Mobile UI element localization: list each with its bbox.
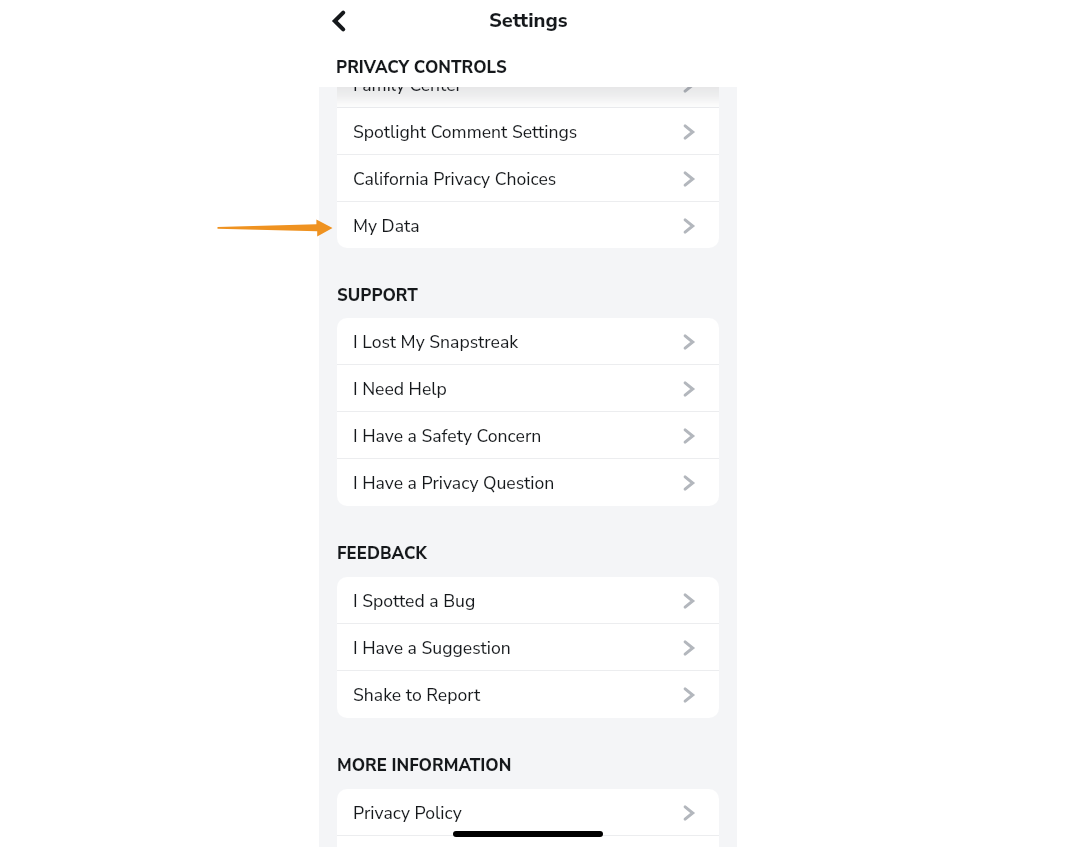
staticText: I Spotted a Bug (353, 589, 476, 613)
staticText: SUPPORT (337, 284, 418, 307)
staticText: I Have a Safety Concern (353, 424, 542, 448)
staticText: My Data (353, 214, 420, 238)
staticText: California Privacy Choices (353, 167, 557, 191)
staticText: I Need Help (353, 377, 447, 401)
staticText: MORE INFORMATION (337, 754, 512, 777)
button[interactable]: I Spotted a Bug (337, 577, 719, 624)
button[interactable]: Back (319, 0, 360, 42)
staticText: Spotlight Comment Settings (353, 120, 578, 144)
staticText: Shake to Report (353, 683, 481, 707)
button[interactable]: Family Center (337, 87, 719, 108)
button[interactable]: Spotlight Comment Settings (337, 108, 719, 155)
staticText: I Have a Suggestion (353, 636, 511, 660)
staticText: Privacy Policy (353, 801, 462, 825)
button[interactable]: Privacy Policy (337, 789, 719, 836)
button[interactable]: I Have a Suggestion (337, 624, 719, 671)
staticText: I Have a Privacy Question (353, 471, 555, 495)
button[interactable]: I Have a Privacy Question (337, 459, 719, 506)
staticText: PRIVACY CONTROLS (336, 56, 507, 79)
staticText: FEEDBACK (337, 542, 427, 565)
button[interactable]: Terms of Service (337, 836, 719, 847)
button[interactable]: Shake to Report (337, 671, 719, 718)
staticText: I Lost My Snapstreak (353, 330, 519, 354)
staticText: Settings (489, 7, 568, 34)
button[interactable]: I Have a Safety Concern (337, 412, 719, 459)
button[interactable]: California Privacy Choices (337, 155, 719, 202)
staticText: Family Center (353, 87, 462, 97)
button[interactable]: I Need Help (337, 365, 719, 412)
button[interactable]: My Data (337, 202, 719, 248)
button[interactable]: I Lost My Snapstreak (337, 318, 719, 365)
